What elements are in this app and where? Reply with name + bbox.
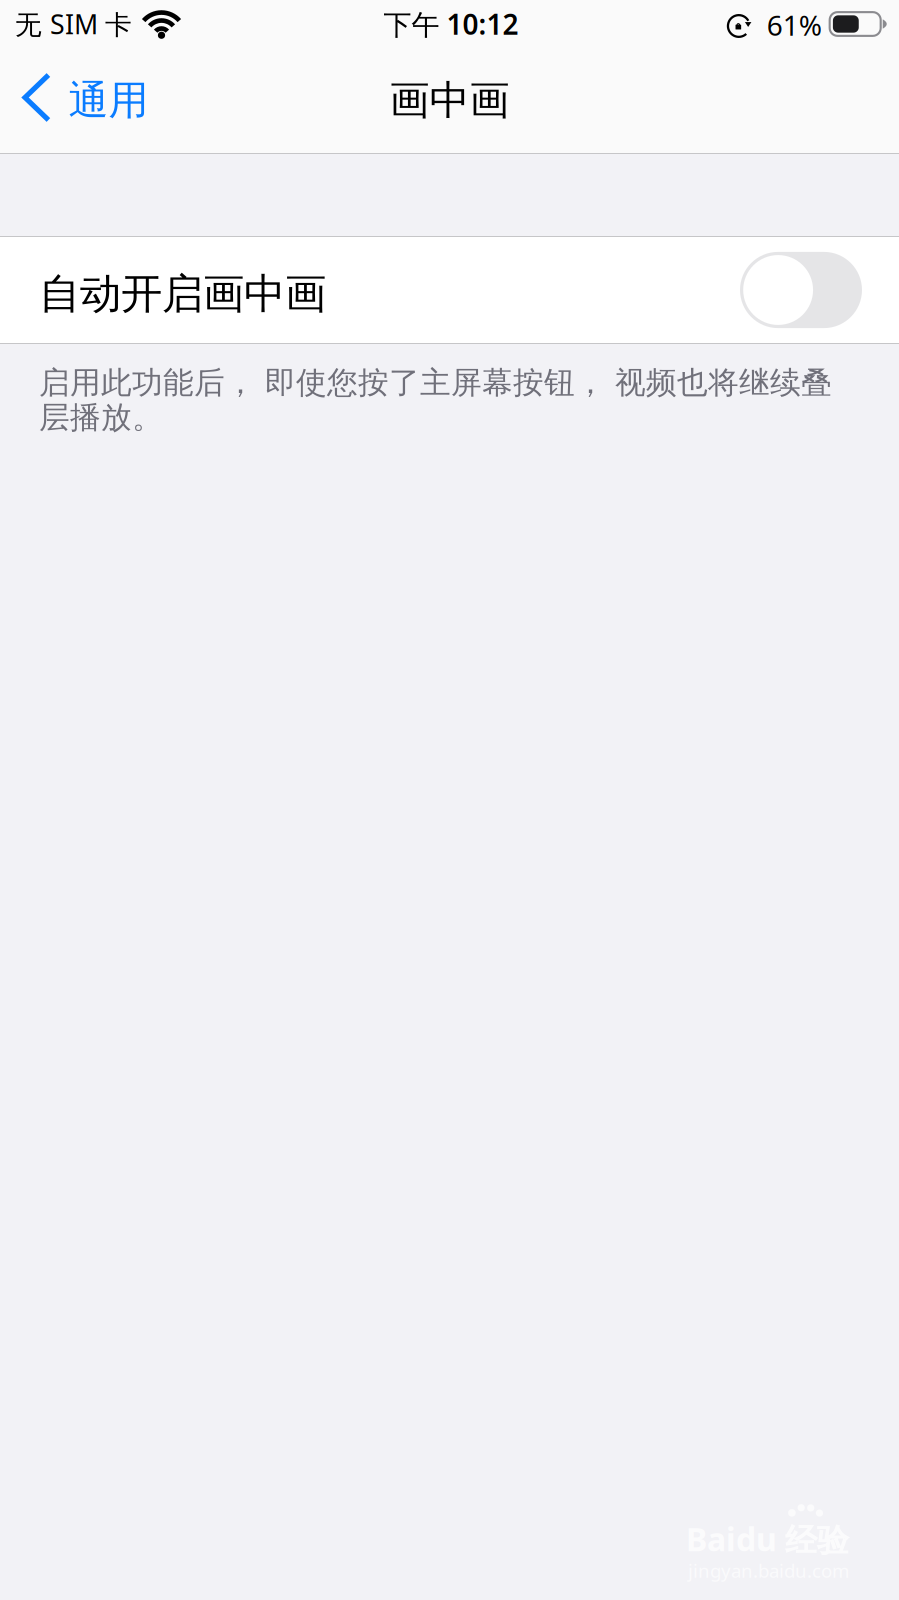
staticText: 下午 10:12 xyxy=(383,5,518,43)
staticText: 自动开启画中画 xyxy=(39,269,326,319)
staticText: 启用此功能后， 即使您按了主屏幕按钮， 视频也将继续叠 xyxy=(39,364,832,402)
staticText: 无 SIM 卡 xyxy=(15,6,132,42)
staticText: 画中画 xyxy=(389,76,509,125)
button[interactable]: 通用 xyxy=(0,56,164,153)
staticText: 通用 xyxy=(68,76,148,125)
staticText: Baidu 经验 xyxy=(686,1517,849,1560)
button[interactable]: 自动开启画中画 xyxy=(740,252,862,328)
staticText: 层播放。 xyxy=(39,399,163,436)
button[interactable]: 自动开启画中画 xyxy=(0,237,899,343)
staticText: 61% xyxy=(767,6,822,44)
